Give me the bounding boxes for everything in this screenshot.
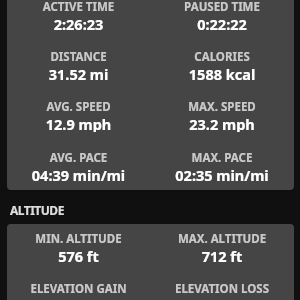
button[interactable]: ELEVATION GAIN <box>7 281 150 300</box>
staticText: MAX. SPEED <box>150 99 294 112</box>
button[interactable]: MAX. ALTITUDE <box>150 231 294 264</box>
staticText: 2:26:23 <box>7 14 150 32</box>
button[interactable]: AVG. SPEED <box>7 99 150 132</box>
button[interactable]: MAX. PACE <box>150 150 294 183</box>
button[interactable]: MIN. ALTITUDE <box>7 231 150 264</box>
staticText: ALTITUDE <box>10 202 64 218</box>
staticText: MIN. ALTITUDE <box>7 231 150 244</box>
staticText: MAX. ALTITUDE <box>150 231 294 244</box>
button[interactable]: AVG. PACE <box>7 150 150 183</box>
button[interactable]: ACTIVE TIME <box>7 0 150 32</box>
staticText: DISTANCE <box>7 49 150 62</box>
staticText: MAX. PACE <box>150 150 294 163</box>
staticText: 0:22:22 <box>150 14 294 32</box>
staticText: ELEVATION LOSS <box>150 281 294 294</box>
staticText: 12.9 mph <box>7 114 150 132</box>
staticText: CALORIES <box>150 49 294 62</box>
staticText: ACTIVE TIME <box>7 0 150 12</box>
staticText: PAUSED TIME <box>150 0 294 12</box>
staticText: 23.2 mph <box>150 114 294 132</box>
staticText: 1588 kcal <box>150 64 294 82</box>
button[interactable]: ELEVATION LOSS <box>150 281 294 300</box>
staticText: 712 ft <box>150 246 294 264</box>
staticText: ELEVATION GAIN <box>7 281 150 294</box>
button[interactable]: MAX. SPEED <box>150 99 294 132</box>
staticText: AVG. SPEED <box>7 99 150 112</box>
button[interactable]: PAUSED TIME <box>150 0 294 32</box>
staticText: 576 ft <box>7 246 150 264</box>
button[interactable]: DISTANCE <box>7 49 150 82</box>
staticText: AVG. PACE <box>7 150 150 163</box>
staticText: 02:35 min/mi <box>150 165 294 183</box>
staticText: 04:39 min/mi <box>7 165 150 183</box>
staticText: 31.52 mi <box>7 64 150 82</box>
button[interactable]: CALORIES <box>150 49 294 82</box>
